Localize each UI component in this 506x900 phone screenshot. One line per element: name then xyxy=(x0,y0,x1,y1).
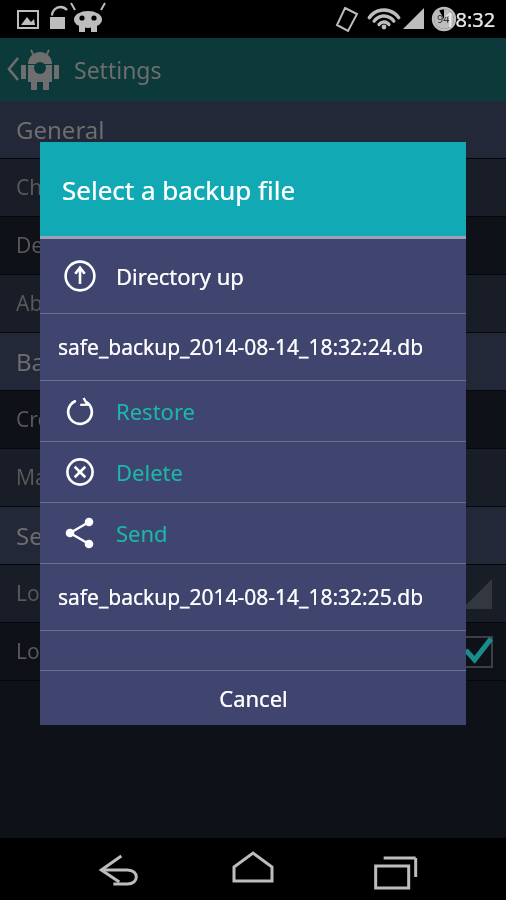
button[interactable]: Directory up xyxy=(40,239,466,313)
button[interactable]: Ma xyxy=(0,449,506,506)
button[interactable]: Restore xyxy=(40,381,466,441)
staticText: Lo xyxy=(16,579,40,608)
staticText: Select a backup file xyxy=(62,172,296,207)
staticText: Cancel xyxy=(219,683,288,713)
button[interactable]: Delete xyxy=(40,442,466,502)
button[interactable]: Ab xyxy=(0,275,506,332)
staticText: Directory up xyxy=(116,261,244,291)
button[interactable]: Cancel xyxy=(40,671,466,725)
staticText: Restore xyxy=(116,396,195,426)
staticText: Lo xyxy=(16,637,40,666)
button[interactable]: Ch xyxy=(0,159,506,216)
staticText: Ma xyxy=(16,463,47,492)
staticText: safe_backup_2014-08-14_18:32:25.db xyxy=(58,583,424,612)
button[interactable]: De xyxy=(0,217,506,274)
staticText: Se xyxy=(16,519,43,552)
button[interactable]: safe_backup_2014-08-14_18:32:25.db xyxy=(40,564,466,630)
button[interactable]: safe_backup_2014-08-14_18:32:24.db xyxy=(40,314,466,380)
staticText: De xyxy=(16,231,44,260)
staticText: 94 xyxy=(437,11,450,26)
staticText: Ba xyxy=(16,345,46,378)
staticText: Ab xyxy=(16,289,43,318)
staticText: 18:32 xyxy=(444,6,496,33)
staticText: Settings xyxy=(74,54,162,85)
button[interactable]: Lo xyxy=(0,623,506,680)
button[interactable]: Cre xyxy=(0,391,506,448)
staticText: Send xyxy=(116,518,168,548)
staticText: General xyxy=(16,113,105,146)
staticText: Delete xyxy=(116,457,183,487)
button[interactable]: Lo xyxy=(0,565,506,622)
button[interactable]: Send xyxy=(40,503,466,563)
staticText: safe_backup_2014-08-14_18:32:24.db xyxy=(58,333,424,362)
staticText: Ch xyxy=(16,173,43,202)
staticText: Cre xyxy=(16,405,50,434)
